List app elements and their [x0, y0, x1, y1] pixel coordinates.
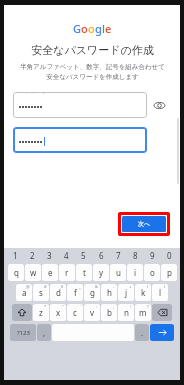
staticText: ,: [43, 327, 46, 338]
button[interactable]: 9: [144, 250, 160, 261]
button[interactable]: a: [16, 284, 32, 301]
button[interactable]: Show password: [152, 98, 166, 112]
staticText: e: [105, 21, 112, 36]
staticText: 4: [64, 250, 69, 261]
button[interactable]: x: [50, 304, 66, 321]
staticText: c: [73, 307, 77, 318]
staticText: *: [44, 304, 47, 309]
staticText: ?123: [17, 329, 30, 337]
staticText: 1: [13, 250, 18, 261]
staticText: k: [141, 287, 146, 298]
staticText: 半角アルファベット、数字、記号を組み合わせて 安全なパスワードを作成します: [20, 63, 165, 81]
staticText: h: [107, 287, 112, 298]
staticText: g: [95, 21, 102, 36]
button[interactable]: 7: [110, 250, 126, 261]
staticText: G: [73, 21, 81, 36]
staticText: z: [39, 307, 43, 318]
button[interactable]: u: [110, 264, 126, 281]
button[interactable]: k: [135, 284, 151, 301]
staticText: ): [164, 284, 166, 289]
staticText: パスワード: [21, 92, 47, 94]
button[interactable]: 確認: [13, 127, 147, 153]
button[interactable]: 8: [127, 250, 143, 261]
staticText: o: [150, 267, 155, 278]
staticText: o: [88, 21, 95, 36]
staticText: 7: [116, 250, 121, 261]
button[interactable]: y: [93, 264, 109, 281]
staticText: y: [99, 267, 104, 278]
staticText: p: [167, 267, 172, 278]
staticText: r: [65, 267, 69, 278]
staticText: 8: [133, 250, 138, 261]
button[interactable]: b: [101, 304, 117, 321]
button[interactable]: Backspace: [152, 304, 172, 321]
staticText: -: [113, 284, 115, 289]
button[interactable]: p: [161, 264, 177, 281]
staticText: 9: [150, 250, 155, 261]
staticText: n: [124, 307, 129, 318]
staticText: 6: [99, 250, 104, 261]
button[interactable]: j: [118, 284, 134, 301]
button[interactable]: l: [152, 284, 168, 301]
button[interactable]: 0: [161, 250, 177, 261]
button[interactable]: 4: [58, 250, 74, 261]
staticText: q: [14, 267, 19, 278]
button[interactable]: q: [8, 264, 24, 281]
staticText: f: [74, 287, 77, 298]
staticText: _: [79, 284, 81, 289]
button[interactable]: z: [33, 304, 49, 321]
staticText: 3: [47, 250, 52, 261]
button[interactable]: s: [33, 284, 49, 301]
button[interactable]: 1: [7, 250, 23, 261]
staticText: ': [80, 304, 81, 309]
button[interactable]: 2: [24, 250, 40, 261]
button[interactable]: g: [84, 284, 100, 301]
staticText: i: [134, 267, 137, 278]
staticText: b: [107, 307, 112, 318]
button[interactable]: v: [84, 304, 100, 321]
button[interactable]: f: [67, 284, 83, 301]
staticText: .: [141, 327, 144, 338]
staticText: v: [90, 307, 95, 318]
button[interactable]: t: [76, 264, 92, 281]
button[interactable]: m: [135, 304, 151, 321]
button[interactable]: o: [144, 264, 160, 281]
staticText: g: [90, 287, 95, 298]
staticText: d: [56, 287, 61, 298]
button[interactable]: .: [135, 324, 149, 341]
button[interactable]: e: [42, 264, 58, 281]
button[interactable]: w: [25, 264, 41, 281]
button[interactable]: 3: [41, 250, 57, 261]
staticText: 0: [167, 250, 172, 261]
staticText: 5: [81, 250, 86, 261]
staticText: m: [139, 307, 147, 318]
button[interactable]: 6: [93, 250, 109, 261]
button[interactable]: n: [118, 304, 134, 321]
staticText: ?: [147, 304, 149, 309]
staticText: &: [95, 284, 98, 289]
button[interactable]: i: [127, 264, 143, 281]
staticText: e: [48, 267, 53, 278]
button[interactable]: 次へ: [122, 216, 166, 232]
staticText: :: [96, 304, 98, 309]
staticText: t: [83, 267, 86, 278]
button[interactable]: ?123: [10, 324, 36, 341]
staticText: l: [159, 287, 162, 298]
button[interactable]: d: [50, 284, 66, 301]
staticText: w: [30, 267, 37, 278]
button[interactable]: Shift: [12, 304, 32, 321]
staticText: o: [81, 21, 88, 36]
staticText: j: [125, 287, 128, 298]
button[interactable]: 5: [75, 250, 91, 261]
button[interactable]: パスワード: [13, 92, 147, 118]
staticText: !: [130, 304, 132, 309]
button[interactable]: Enter: [150, 324, 174, 341]
staticText: a: [22, 287, 27, 298]
button[interactable]: r: [59, 264, 75, 281]
button[interactable]: c: [67, 304, 83, 321]
staticText: ;: [113, 304, 115, 309]
button[interactable]: ,: [37, 324, 51, 341]
button[interactable]: h: [101, 284, 117, 301]
staticText: x: [56, 307, 61, 318]
